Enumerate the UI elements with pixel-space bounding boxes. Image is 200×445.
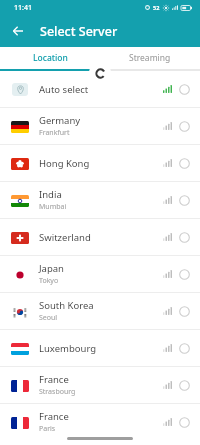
button[interactable]: Auto select (0, 71, 200, 107)
staticText: Seoul (39, 313, 58, 323)
staticText: Auto select (39, 83, 89, 96)
staticText: France (39, 410, 69, 423)
staticText: France (39, 373, 69, 386)
staticText: 11:41 (14, 3, 32, 13)
button[interactable]: Switzerland (0, 219, 200, 255)
staticText: Hong Kong (39, 157, 90, 170)
button[interactable]: India (0, 182, 200, 218)
button[interactable]: Refresh (89, 62, 111, 84)
button[interactable]: Japan (0, 256, 200, 292)
button[interactable]: France (0, 404, 200, 440)
staticText: Luxembourg (39, 342, 97, 355)
button[interactable]: Luxembourg (0, 330, 200, 366)
staticText: Japan (39, 262, 64, 275)
staticText: Streaming (129, 52, 171, 64)
button[interactable]: France (0, 367, 200, 403)
staticText: India (39, 188, 62, 201)
staticText: Mumbai (39, 202, 67, 212)
staticText: Frankfurt (39, 128, 70, 138)
staticText: Location (33, 52, 68, 64)
staticText: Germany (39, 114, 81, 127)
staticText: Paris (39, 424, 56, 434)
staticText: Tokyo (39, 276, 59, 286)
staticText: South Korea (39, 299, 94, 312)
staticText: Switzerland (39, 231, 91, 244)
button[interactable]: Germany (0, 108, 200, 144)
staticText: 52 (153, 4, 160, 11)
button[interactable]: Streaming (100, 47, 200, 69)
staticText: Strasbourg (39, 387, 76, 397)
button[interactable]: Location (0, 47, 100, 69)
button[interactable]: South Korea (0, 293, 200, 329)
staticText: Select Server (40, 23, 118, 40)
button[interactable]: Back (7, 20, 29, 42)
button[interactable]: Hong Kong (0, 145, 200, 181)
